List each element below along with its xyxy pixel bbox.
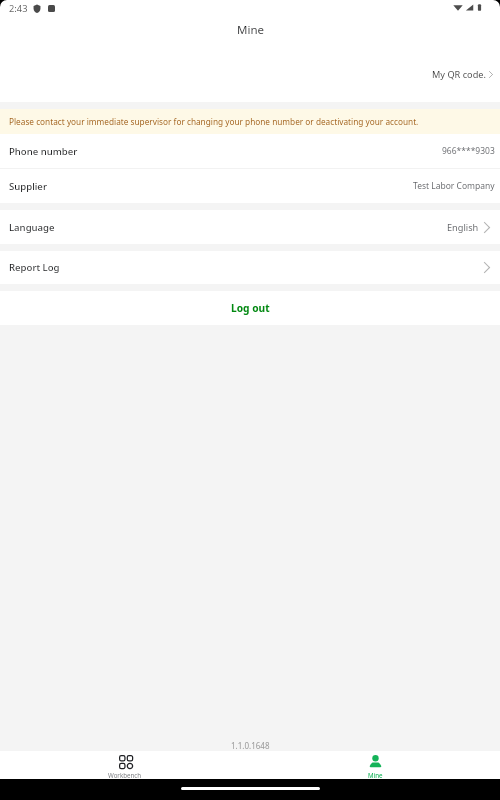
staticText: Mine xyxy=(368,771,383,779)
button[interactable]: Language xyxy=(0,210,500,244)
staticText: My QR code. xyxy=(432,68,486,81)
staticText: Supplier xyxy=(9,180,47,193)
button[interactable]: My QR code. xyxy=(422,64,500,85)
staticText: 2:43 xyxy=(9,2,28,15)
button[interactable]: Mine xyxy=(250,751,500,779)
staticText: Test Labor Company xyxy=(413,180,495,192)
button[interactable]: Workbench xyxy=(0,751,250,779)
staticText: Please contact your immediate supervisor… xyxy=(9,116,419,127)
staticText: Report Log xyxy=(9,261,60,274)
staticText: Mine xyxy=(237,22,264,38)
staticText: Workbench xyxy=(108,771,142,779)
button[interactable]: Report Log xyxy=(0,251,500,284)
staticText: 1.1.0.1648 xyxy=(231,740,270,751)
button[interactable]: Log out xyxy=(0,291,500,325)
staticText: Language xyxy=(9,221,55,234)
staticText: English xyxy=(447,221,479,234)
staticText: Phone number xyxy=(9,145,78,158)
staticText: Log out xyxy=(231,301,270,315)
staticText: 966****9303 xyxy=(442,145,495,157)
